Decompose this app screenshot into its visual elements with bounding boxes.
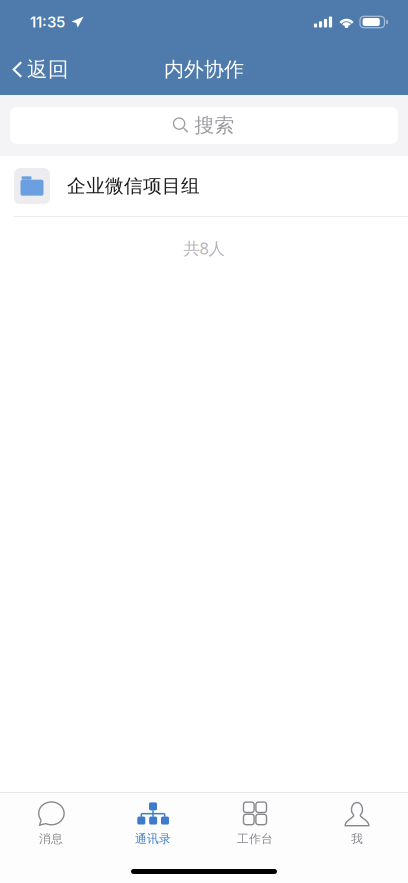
staticText: 我 — [351, 831, 363, 846]
staticText: 通讯录 — [135, 831, 171, 846]
staticText: 11:35 — [30, 13, 65, 31]
button[interactable]: 我 — [306, 793, 408, 849]
staticText: 共8人 — [183, 237, 224, 259]
staticText: 搜索 — [194, 113, 234, 138]
button[interactable]: 搜索 — [0, 95, 408, 156]
staticText: 企业微信项目组 — [67, 174, 200, 198]
staticText: 工作台 — [237, 831, 273, 846]
staticText: 消息 — [39, 831, 63, 846]
staticText: 内外协作 — [164, 57, 244, 82]
button[interactable]: 消息 — [0, 793, 102, 849]
staticText: 返回 — [27, 57, 69, 82]
button[interactable]: 通讯录 — [102, 793, 204, 849]
button[interactable]: 返回 — [0, 44, 81, 95]
button[interactable]: 工作台 — [204, 793, 306, 849]
button[interactable]: 企业微信项目组 — [0, 156, 408, 216]
